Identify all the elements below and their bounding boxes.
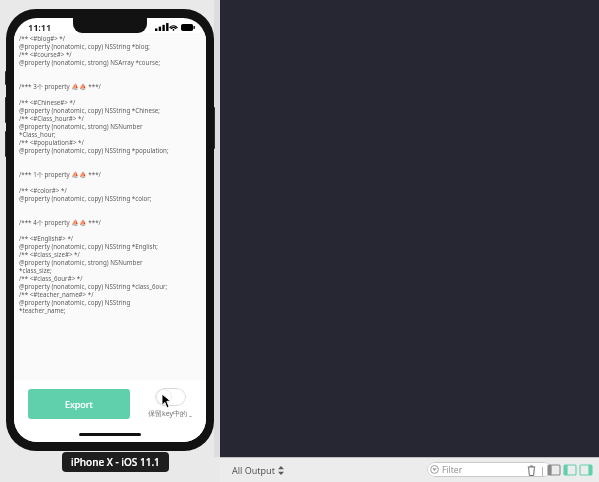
staticText: /** <#color#> */ <box>19 186 67 194</box>
staticText: Export <box>65 398 93 410</box>
staticText: 11:11 <box>28 21 52 33</box>
staticText: @property (nonatomic, copy) NSString *Ch… <box>19 106 161 114</box>
staticText: /*** 1个 property ⛵⛵ ***/ <box>19 170 101 178</box>
staticText: @property (nonatomic, copy) NSString *En… <box>19 242 158 250</box>
staticText: /** <#teacher_name#> */ <box>19 290 94 298</box>
staticText: @property (nonatomic, copy) NSString *po… <box>19 146 169 154</box>
staticText: @property (nonatomic, copy) NSString <box>19 298 131 306</box>
staticText: @property (nonatomic, copy) NSString *bl… <box>19 42 150 50</box>
staticText: @property (nonatomic, copy) NSString *cl… <box>19 282 168 290</box>
staticText: All Output <box>232 464 275 476</box>
staticText: *teacher_name; <box>19 306 66 314</box>
staticText: | <box>540 464 545 476</box>
button[interactable]: All Output <box>230 462 286 478</box>
staticText: /** <#Chinese#> */ <box>19 98 76 106</box>
staticText: /*** 3个 property ⛵⛵ ***/ <box>19 82 101 90</box>
staticText: /** <#English#> */ <box>19 234 74 242</box>
staticText: Filter <box>442 464 463 476</box>
staticText: /** <#course#> */ <box>19 50 72 58</box>
staticText: *Class_hour; <box>19 130 56 138</box>
button[interactable]: Clear console <box>523 461 539 479</box>
staticText: iPhone X - iOS 11.1 <box>71 455 160 469</box>
staticText: @property (nonatomic, strong) NSNumber <box>19 122 143 130</box>
button[interactable]: Toggle utilities <box>578 461 594 479</box>
staticText: /*** 4个 property ⛵⛵ ***/ <box>19 218 101 226</box>
button[interactable]: iPhone X - iOS 11.1 <box>62 452 169 472</box>
button[interactable]: /** <#blog#> */ <box>14 33 206 380</box>
button[interactable]: Export <box>28 389 130 419</box>
staticText: /** <#class_6our#> */ <box>19 274 83 282</box>
staticText: @property (nonatomic, strong) NSNumber <box>19 258 143 266</box>
staticText: /** <#blog#> */ <box>19 34 66 42</box>
staticText: /** <#class_size#> */ <box>19 250 80 258</box>
staticText: /** <#population#> */ <box>19 138 84 146</box>
staticText: *class_size; <box>19 266 52 274</box>
staticText: /** <#Class_hour#> */ <box>19 114 84 122</box>
button[interactable]: Keep key toggle <box>155 388 186 406</box>
button[interactable]: Toggle debug area <box>562 461 578 479</box>
staticText: 保留key中的 _ <box>148 409 193 419</box>
staticText: @property (nonatomic, copy) NSString *co… <box>19 194 152 202</box>
button[interactable]: Toggle navigator <box>546 461 562 479</box>
button[interactable]: Filter <box>427 462 552 477</box>
staticText: @property (nonatomic, strong) NSArray *c… <box>19 58 161 66</box>
